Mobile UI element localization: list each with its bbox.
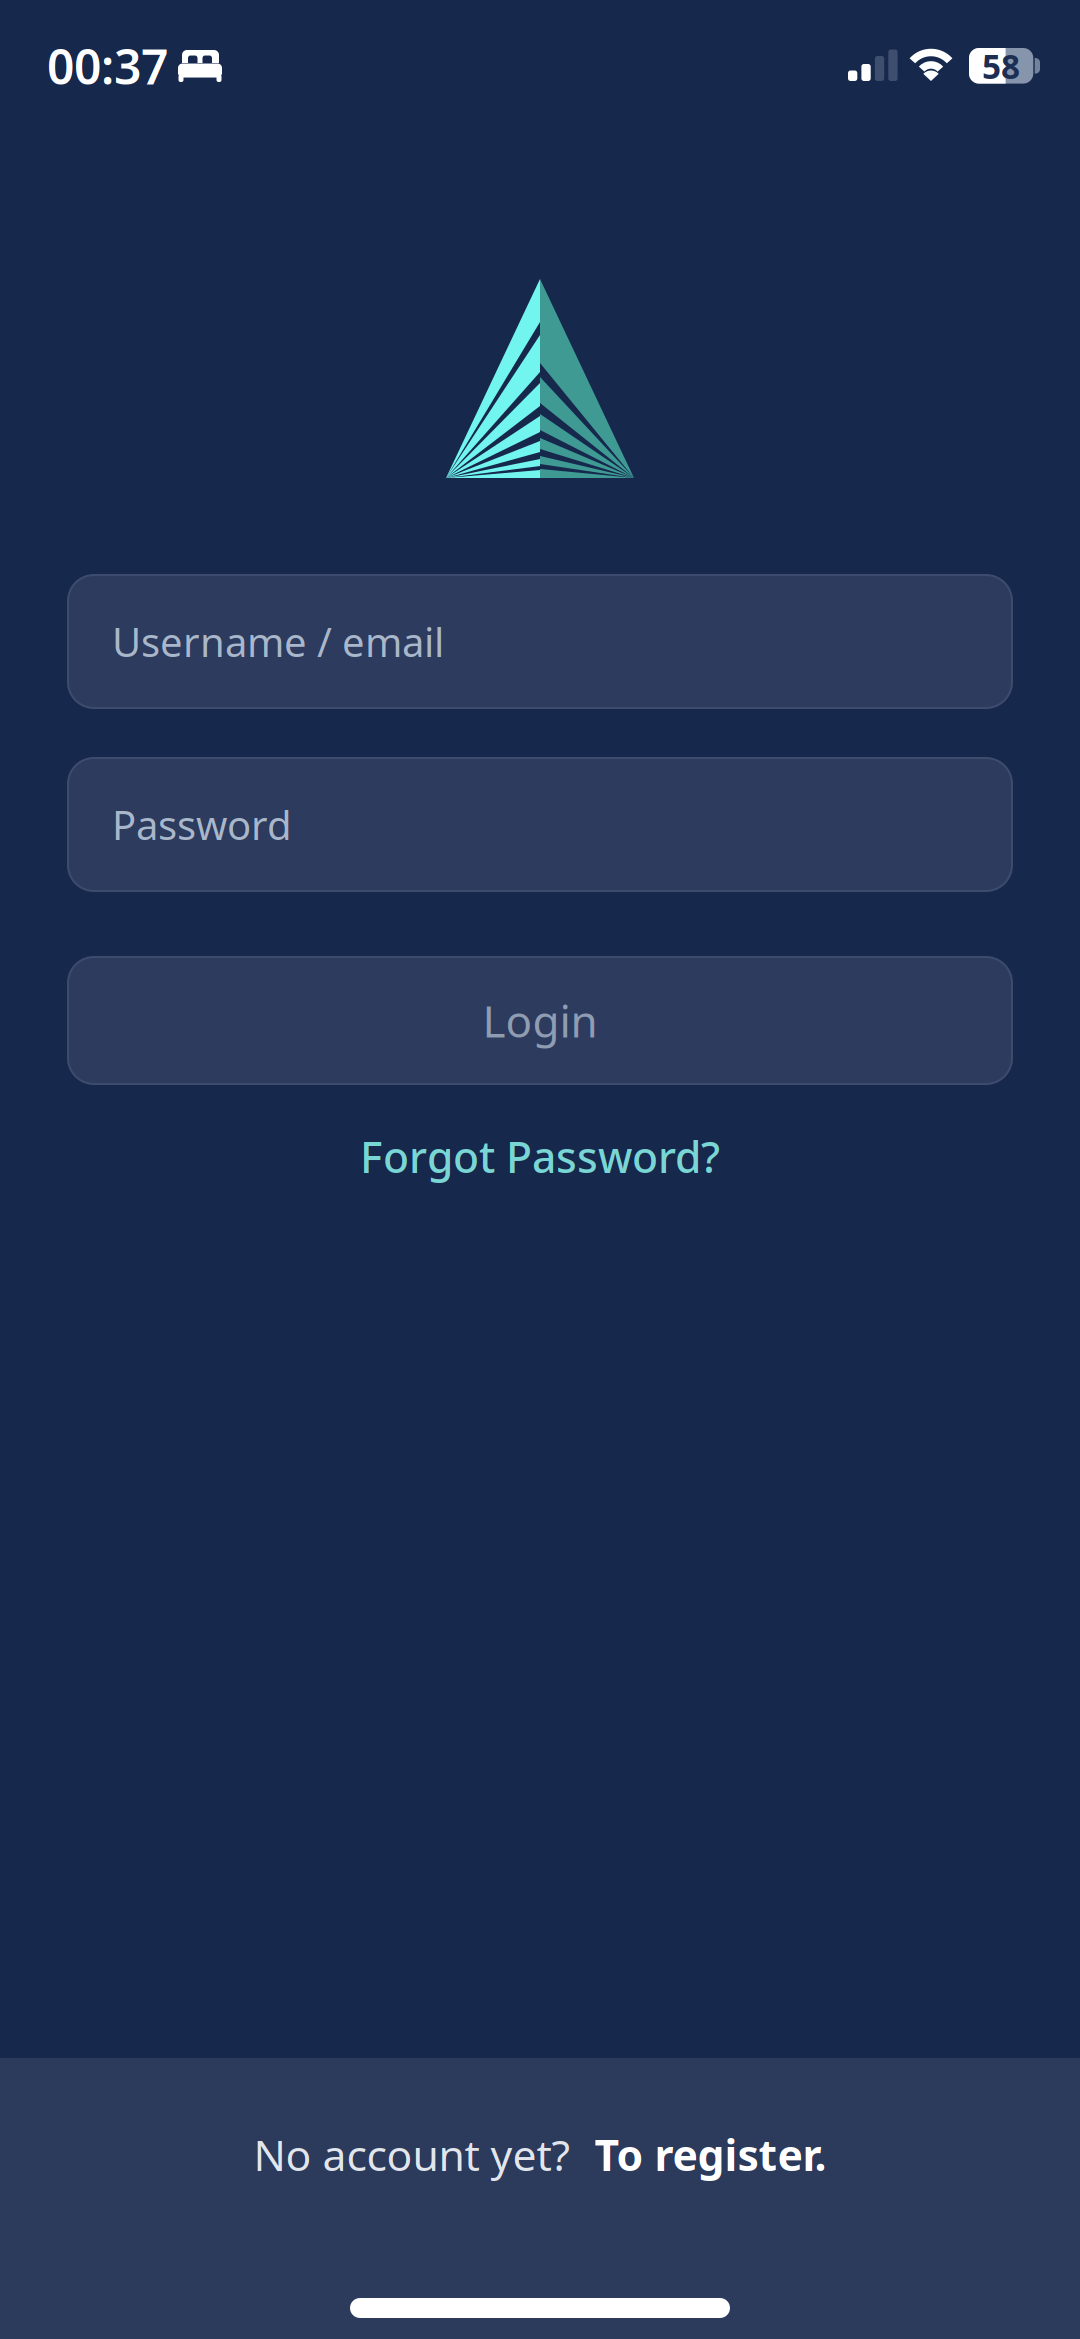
staticText: Forgot Password?: [360, 1128, 720, 1185]
staticText: Password: [112, 798, 292, 851]
button[interactable]: Password: [68, 758, 1012, 891]
button[interactable]: No account yet?: [253, 2126, 826, 2183]
staticText: Username / email: [112, 615, 444, 668]
button[interactable]: Login: [68, 957, 1012, 1084]
staticText: 58: [982, 44, 1020, 88]
button[interactable]: Forgot Password?: [360, 1128, 720, 1185]
staticText: To register.: [594, 2126, 826, 2183]
button[interactable]: Username / email: [68, 575, 1012, 708]
staticText: 00:37: [47, 34, 168, 98]
staticText: No account yet?: [253, 2126, 570, 2183]
staticText: Login: [482, 991, 597, 1050]
